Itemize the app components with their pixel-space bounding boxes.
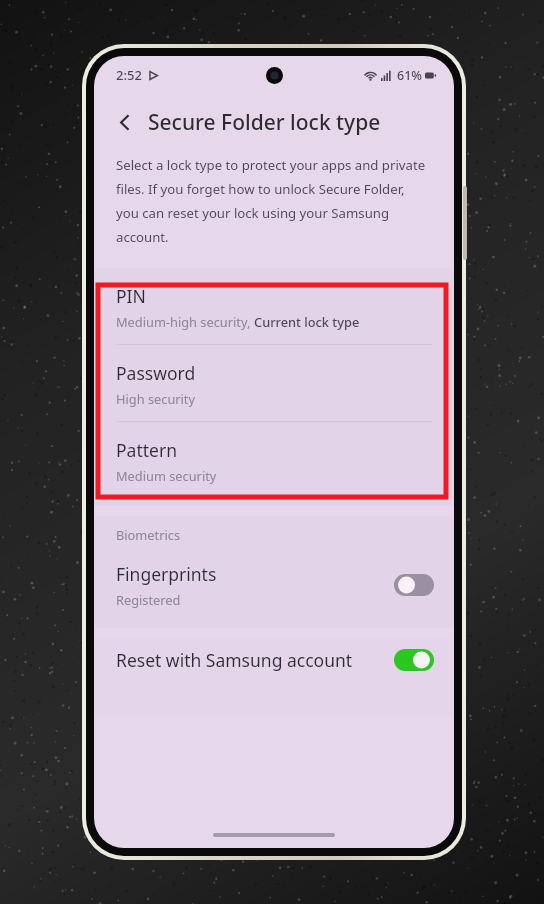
staticText: Medium security: [116, 467, 217, 484]
button[interactable]: Password: [94, 345, 454, 421]
staticText: 61%: [397, 67, 422, 84]
button[interactable]: Pattern: [94, 422, 454, 498]
staticText: Select a lock type to protect your apps …: [116, 156, 426, 246]
staticText: Medium-high security,: [116, 313, 254, 330]
staticText: Password: [116, 361, 196, 385]
staticText: Fingerprints: [116, 562, 217, 586]
button[interactable]: Back: [106, 103, 144, 141]
button[interactable]: Fingerprints: [94, 552, 454, 618]
staticText: Registered: [116, 591, 181, 608]
staticText: Biometrics: [116, 526, 181, 543]
staticText: Current lock type: [254, 313, 360, 330]
staticText: 2:52: [116, 66, 142, 84]
staticText: Reset with Samsung account: [116, 648, 353, 672]
button[interactable]: PIN: [94, 268, 454, 344]
button[interactable]: Reset with Samsung account: [94, 638, 454, 682]
staticText: Pattern: [116, 438, 177, 462]
staticText: PIN: [116, 284, 146, 308]
staticText: High security: [116, 390, 196, 407]
staticText: Secure Folder lock type: [148, 108, 381, 137]
